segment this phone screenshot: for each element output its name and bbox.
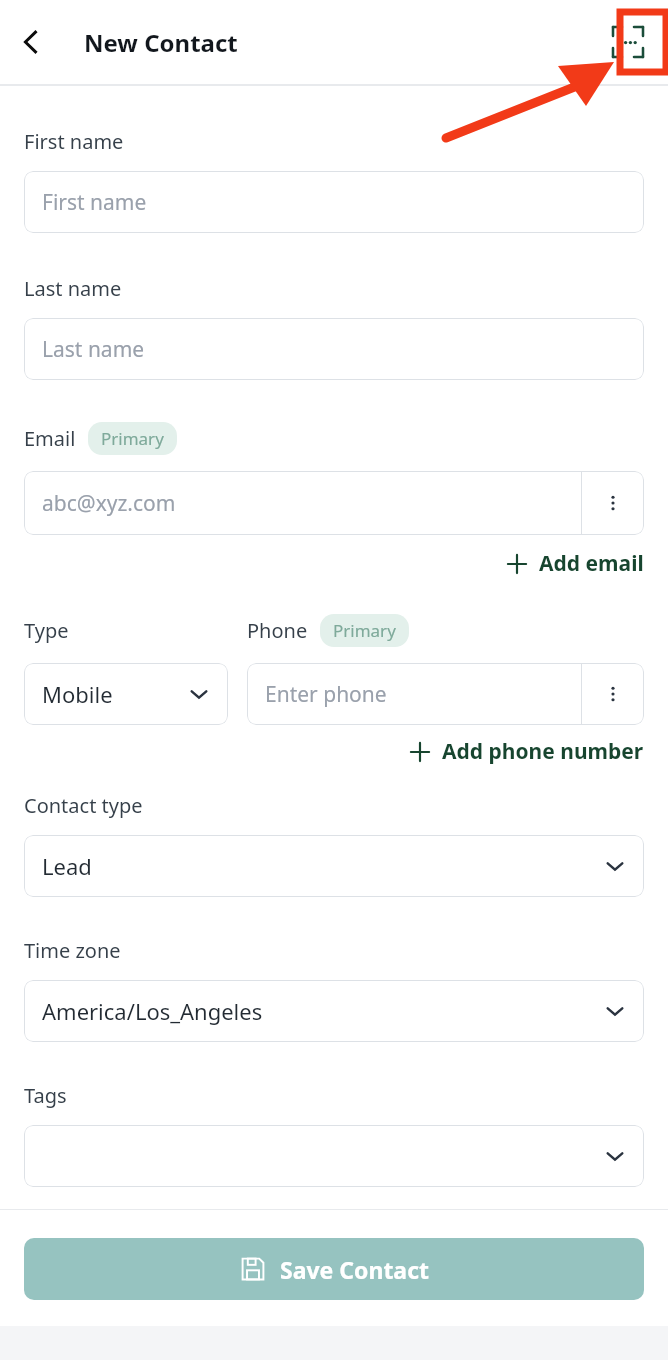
button[interactable]: Save Contact — [24, 1238, 644, 1300]
staticText: Time zone — [24, 937, 121, 964]
staticText: First name — [24, 128, 124, 155]
staticText: Contact type — [24, 792, 143, 819]
staticText: New Contact — [84, 26, 238, 59]
staticText: Mobile — [42, 679, 113, 709]
staticText: America/Los_Angeles — [42, 996, 263, 1026]
button[interactable]: abc@xyz.com — [24, 471, 644, 535]
button[interactable]: Enter phone — [247, 663, 644, 725]
staticText: Last name — [24, 275, 122, 302]
staticText: Enter phone — [265, 680, 387, 709]
button[interactable] — [24, 1125, 644, 1187]
button[interactable]: First name — [24, 171, 644, 233]
button[interactable]: More options — [582, 471, 644, 535]
staticText: Last name — [42, 335, 145, 364]
staticText: Type — [24, 617, 69, 644]
button[interactable]: Add phone number — [408, 733, 644, 770]
button[interactable]: Lead — [24, 835, 644, 897]
staticText: Phone — [247, 617, 308, 644]
staticText: Add phone number — [442, 737, 644, 766]
button[interactable]: Add email — [505, 545, 644, 582]
button[interactable]: America/Los_Angeles — [24, 980, 644, 1042]
staticText: Primary — [101, 427, 164, 450]
staticText: Email — [24, 425, 76, 452]
button[interactable]: Last name — [24, 318, 644, 380]
button[interactable]: Scan card — [606, 20, 650, 64]
staticText: Primary — [333, 619, 396, 642]
staticText: First name — [42, 188, 147, 217]
staticText: Tags — [24, 1082, 67, 1109]
staticText: abc@xyz.com — [42, 489, 176, 518]
button[interactable]: More options — [582, 663, 644, 725]
staticText: Add email — [539, 549, 644, 578]
staticText: Lead — [42, 851, 92, 881]
button[interactable]: Back — [0, 11, 62, 73]
staticText: Save Contact — [280, 1254, 429, 1285]
button[interactable]: Mobile — [24, 663, 228, 725]
